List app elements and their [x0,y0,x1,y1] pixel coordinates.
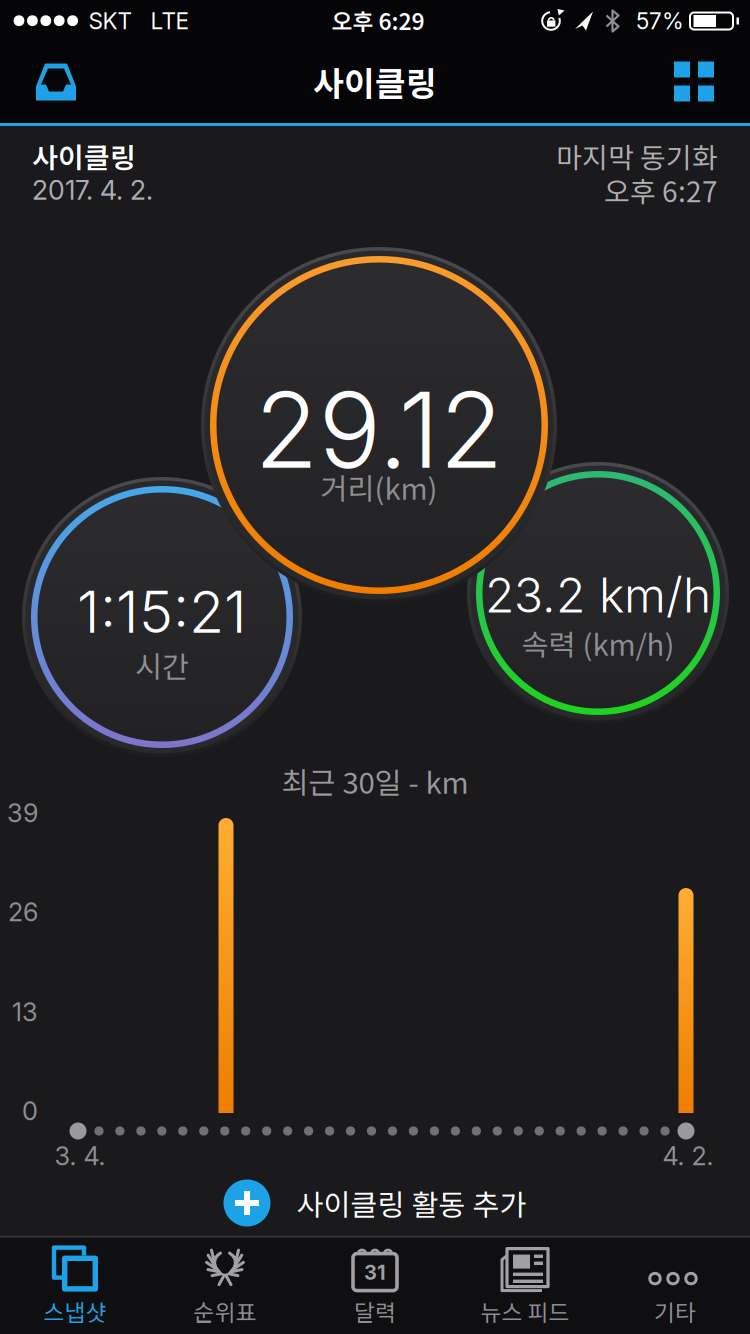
button[interactable]: 31 [300,1238,450,1332]
staticText: 3. 4. [54,1141,105,1171]
staticText: 57% [636,8,684,34]
staticText: 오후 6:29 [331,4,424,36]
staticText: 순위표 [193,1295,256,1327]
staticText: 26 [8,897,38,927]
staticText: 속력 (km/h) [521,622,674,664]
staticText: 2017. 4. 2. [32,174,153,206]
staticText: 마지막 동기화 [556,136,718,176]
button[interactable]: 스냅샷 [0,1238,150,1332]
button[interactable]: 순위표 [150,1238,300,1332]
button[interactable]: Inbox [28,53,84,109]
staticText: 달력 [354,1295,396,1327]
staticText: 사이클링 [32,136,136,176]
button[interactable]: Menu [666,53,722,109]
staticText: LTE [150,8,189,34]
staticText: 거리(km) [320,466,437,508]
staticText: 오후 6:27 [604,170,718,210]
staticText: 기타 [654,1295,696,1327]
staticText: 4. 2. [662,1141,713,1171]
button[interactable]: 기타 [600,1238,750,1332]
staticText: 13 [12,997,38,1027]
staticText: 스냅샷 [43,1295,106,1327]
button[interactable]: 사이클링 활동 추가 [223,1179,526,1226]
staticText: SKT [88,8,131,34]
staticText: 1:15:21 [77,578,247,646]
staticText: 뉴스 피드 [480,1295,569,1327]
staticText: 최근 30일 - km [281,760,468,802]
staticText: 시간 [135,644,189,686]
staticText: 23.2 km/h [485,567,711,623]
staticText: 사이클링 활동 추가 [296,1182,526,1224]
staticText: 39 [7,798,38,828]
staticText: 31 [364,1261,386,1284]
staticText: 0 [22,1096,38,1126]
staticText: 사이클링 [313,57,437,106]
staticText: 29.12 [254,369,503,491]
button[interactable]: 뉴스 피드 [450,1238,600,1332]
